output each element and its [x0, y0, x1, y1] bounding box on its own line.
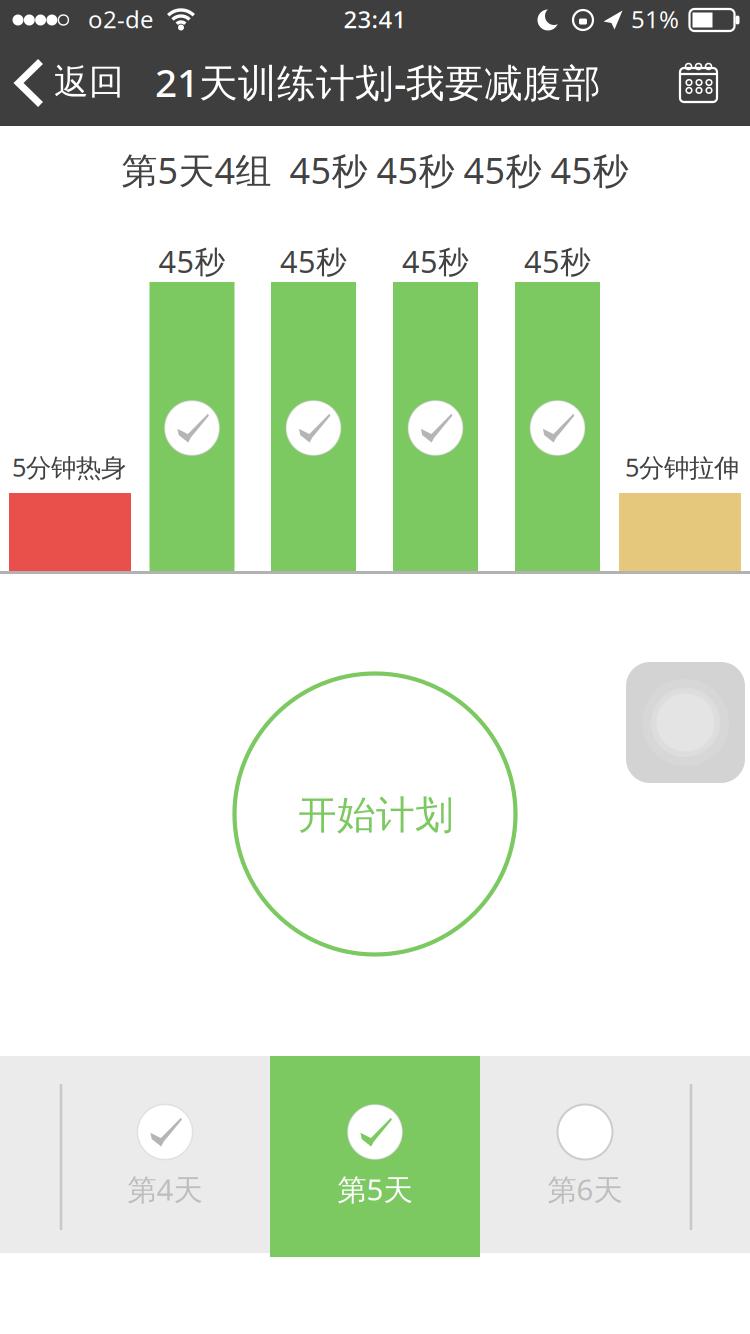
staticText: 45秒	[280, 241, 347, 281]
staticText: 21天训练计划-我要减腹部	[155, 56, 601, 108]
staticText: o2-de	[88, 3, 154, 35]
staticText: 5分钟热身	[12, 450, 126, 484]
staticText: 第5天	[337, 1169, 412, 1208]
staticText: 第6天	[547, 1169, 622, 1208]
staticText: 51%	[631, 3, 679, 35]
staticText: 开始计划	[298, 791, 454, 839]
staticText: 23:41	[343, 3, 406, 35]
staticText: 第5天4组 45秒 45秒 45秒 45秒	[121, 146, 628, 194]
staticText: 45秒	[402, 241, 469, 281]
staticText: 返回	[54, 61, 124, 103]
staticText: 第4天	[127, 1169, 202, 1208]
staticText: 45秒	[158, 241, 225, 281]
staticText: 5分钟拉伸	[625, 450, 739, 484]
staticText: 45秒	[524, 241, 591, 281]
